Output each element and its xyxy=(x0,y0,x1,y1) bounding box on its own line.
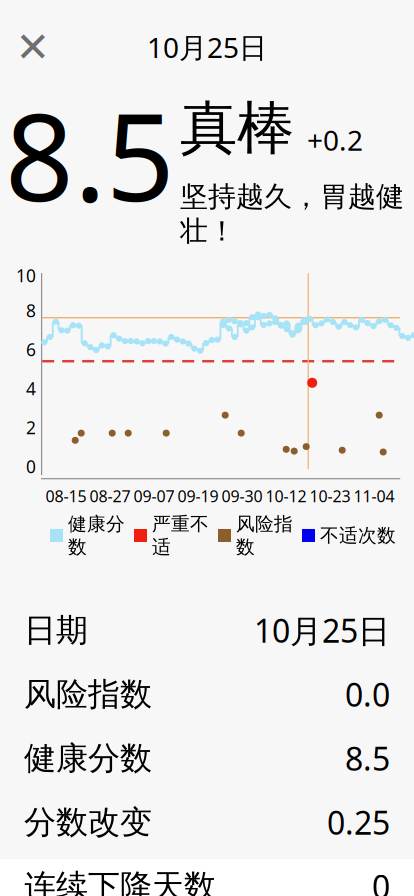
staticText: 09-07 xyxy=(133,485,174,506)
staticText: 10-23 xyxy=(309,485,350,506)
staticText: 日期 xyxy=(24,611,88,650)
button[interactable]: 连续下降天数 xyxy=(0,854,414,896)
staticText: 8 xyxy=(26,299,36,322)
staticText: 10月25日 xyxy=(147,28,267,66)
staticText: 11-04 xyxy=(353,485,394,506)
staticText: 10 xyxy=(16,264,36,287)
staticText: 0.25 xyxy=(327,801,390,844)
staticText: 8.5 xyxy=(5,75,175,234)
staticText: 2 xyxy=(26,416,36,439)
staticText: 风险指数 xyxy=(24,675,152,714)
staticText: 健康分数 xyxy=(24,739,152,778)
staticText: ✕ xyxy=(15,24,50,70)
staticText: 坚持越久，胃越健壮！ xyxy=(180,179,404,248)
button[interactable]: 风险指数 xyxy=(0,662,414,726)
button[interactable]: Close xyxy=(11,25,55,69)
staticText: 08-27 xyxy=(89,485,130,506)
staticText: 健康分数 xyxy=(68,512,125,558)
staticText: 分数改变 xyxy=(24,803,152,842)
staticText: 10-12 xyxy=(265,485,306,506)
staticText: 6 xyxy=(26,338,36,361)
staticText: 风险指数 xyxy=(236,512,293,558)
staticText: 严重不适 xyxy=(152,512,209,558)
staticText: 08-15 xyxy=(45,485,86,506)
staticText: 4 xyxy=(26,377,36,400)
button[interactable]: 健康分数 xyxy=(0,726,414,790)
button[interactable]: 日期 xyxy=(0,598,414,662)
staticText: 真棒 xyxy=(180,93,294,163)
staticText: 8.5 xyxy=(345,737,390,780)
button[interactable]: 分数改变 xyxy=(0,790,414,854)
staticText: 不适次数 xyxy=(320,524,396,547)
staticText: 09-30 xyxy=(221,485,262,506)
staticText: +0.2 xyxy=(307,121,363,158)
staticText: 0.0 xyxy=(345,673,390,716)
staticText: 09-19 xyxy=(177,485,218,506)
staticText: 0 xyxy=(26,455,36,478)
staticText: 10月25日 xyxy=(254,609,390,652)
